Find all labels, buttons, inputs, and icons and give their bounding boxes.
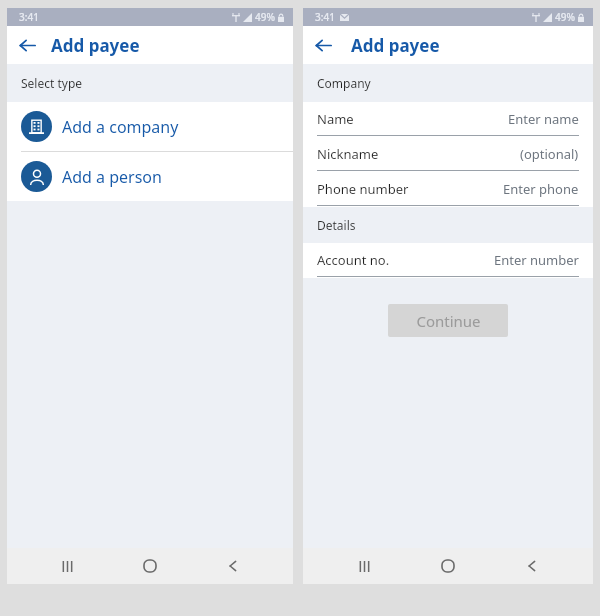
staticText: Details: [317, 217, 356, 233]
staticText: Add a company: [62, 116, 179, 138]
staticText: Company: [317, 75, 371, 91]
button[interactable]: Back: [509, 548, 555, 584]
button[interactable]: Add a company: [7, 102, 293, 151]
button[interactable]: Account no.: [303, 243, 593, 278]
staticText: Enter name: [508, 110, 579, 128]
staticText: Account no.: [317, 251, 390, 269]
button[interactable]: Continue: [388, 304, 508, 337]
staticText: Select type: [21, 75, 83, 91]
button[interactable]: Phone number: [303, 172, 593, 207]
button[interactable]: Back: [7, 26, 47, 64]
button[interactable]: Back: [210, 548, 256, 584]
button[interactable]: Add a person: [7, 152, 293, 201]
button[interactable]: Back: [303, 26, 343, 64]
staticText: 3:41: [315, 10, 335, 24]
staticText: Phone number: [317, 180, 409, 198]
button[interactable]: Recents: [341, 548, 387, 584]
staticText: Enter number: [494, 251, 579, 269]
staticText: 49%: [255, 10, 275, 24]
staticText: Add payee: [51, 34, 140, 57]
button[interactable]: Name: [303, 102, 593, 137]
staticText: Name: [317, 110, 354, 128]
staticText: Continue: [416, 311, 481, 331]
staticText: Nickname: [317, 145, 379, 163]
staticText: Add a person: [62, 166, 162, 188]
button[interactable]: Home: [127, 548, 173, 584]
staticText: 49%: [555, 10, 575, 24]
button[interactable]: Nickname: [303, 137, 593, 172]
staticText: Enter phone: [503, 180, 579, 198]
staticText: (optional): [520, 145, 579, 163]
staticText: 3:41: [19, 10, 39, 24]
button[interactable]: Recents: [44, 548, 90, 584]
button[interactable]: Home: [425, 548, 471, 584]
staticText: Add payee: [351, 34, 440, 57]
